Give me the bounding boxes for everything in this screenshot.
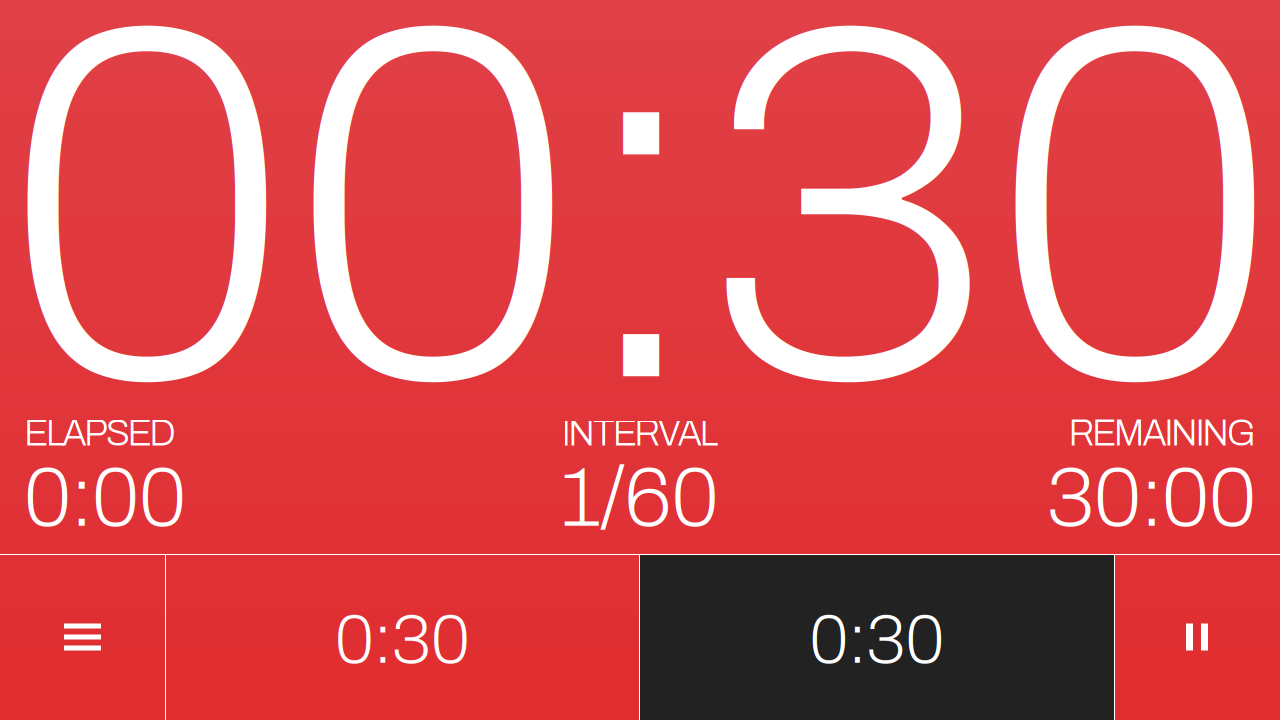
staticText: 0:00 bbox=[24, 453, 186, 543]
staticText: ELAPSED bbox=[24, 414, 176, 453]
staticText: REMAINING bbox=[1068, 414, 1256, 453]
staticText: 1/60 bbox=[561, 453, 718, 543]
button[interactable]: 0:30 bbox=[640, 554, 1114, 720]
button[interactable]: Pause bbox=[1114, 554, 1280, 720]
staticText: INTERVAL bbox=[561, 414, 718, 453]
staticText: 30:00 bbox=[1047, 453, 1256, 543]
button[interactable]: 0:30 bbox=[165, 554, 640, 720]
staticText: 0:30 bbox=[809, 603, 944, 677]
button[interactable]: Menu bbox=[0, 554, 165, 720]
staticText: 00:30 bbox=[4, 0, 1278, 481]
staticText: 0:30 bbox=[335, 603, 470, 677]
